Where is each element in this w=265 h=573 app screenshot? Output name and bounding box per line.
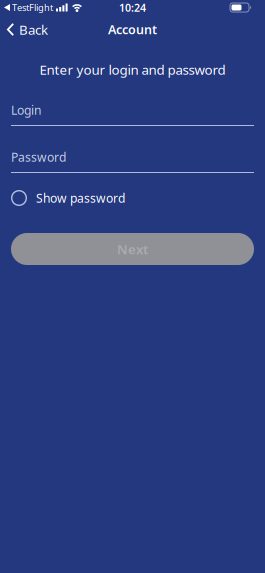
- staticText: Show password: [36, 190, 125, 206]
- staticText: Account: [108, 21, 157, 38]
- staticText: Login: [11, 102, 41, 118]
- staticText: 10:24: [119, 0, 146, 15]
- button[interactable]: Back to TestFlight: [4, 1, 53, 14]
- staticText: Password: [11, 149, 66, 165]
- button[interactable]: Back: [0, 21, 48, 38]
- button[interactable]: Login: [0, 103, 265, 126]
- staticText: Back: [19, 21, 48, 38]
- staticText: TestFlight: [12, 1, 53, 14]
- button[interactable]: Show password: [0, 190, 125, 206]
- button[interactable]: Password: [0, 150, 265, 173]
- button[interactable]: Next: [0, 233, 265, 265]
- staticText: Next: [117, 240, 148, 258]
- staticText: Enter your login and password: [39, 61, 225, 78]
